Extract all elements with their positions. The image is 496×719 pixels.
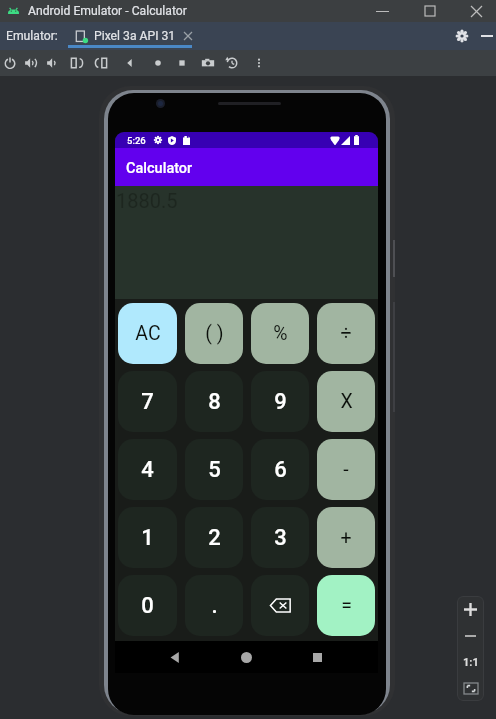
staticText: 8 bbox=[208, 389, 221, 415]
button[interactable]: Rotate right bbox=[90, 50, 112, 76]
staticText: 1 bbox=[141, 525, 154, 551]
button[interactable]: 5 bbox=[185, 439, 243, 500]
button[interactable]: Volume up bbox=[20, 50, 42, 76]
button[interactable]: 7 bbox=[118, 371, 177, 432]
staticText: Emulator: bbox=[6, 29, 58, 43]
button[interactable]: Hide bbox=[476, 22, 496, 50]
staticText: ( ) bbox=[205, 322, 224, 345]
staticText: 1880.5 bbox=[116, 189, 178, 212]
button[interactable]: . bbox=[185, 575, 243, 636]
staticText: 5:26 bbox=[127, 135, 146, 146]
staticText: AC bbox=[135, 322, 161, 345]
staticText: 6 bbox=[274, 457, 287, 483]
button[interactable]: = bbox=[317, 575, 375, 636]
button[interactable]: Home bbox=[230, 641, 262, 673]
button[interactable]: % bbox=[251, 303, 309, 364]
button[interactable]: Pixel 3a API 31 bbox=[75, 22, 200, 50]
button[interactable]: Back bbox=[159, 641, 191, 673]
button[interactable]: Minimize bbox=[359, 0, 406, 22]
staticText: X bbox=[340, 390, 353, 413]
staticText: 5 bbox=[208, 457, 221, 483]
other: Backspace bbox=[270, 598, 291, 613]
button[interactable]: + bbox=[317, 507, 375, 568]
staticText: Calculator bbox=[126, 160, 193, 177]
button[interactable]: Zoom in bbox=[457, 596, 484, 623]
button[interactable]: Rotate left bbox=[66, 50, 88, 76]
button[interactable]: Volume down bbox=[42, 50, 64, 76]
button[interactable]: Power bbox=[0, 50, 21, 76]
button[interactable]: More bbox=[248, 50, 270, 76]
staticText: 2 bbox=[208, 525, 221, 551]
staticText: 9 bbox=[274, 389, 287, 415]
button[interactable]: 1 bbox=[118, 507, 177, 568]
button[interactable]: AC bbox=[118, 303, 177, 364]
button[interactable]: Fit to window bbox=[457, 675, 484, 701]
button[interactable]: 4 bbox=[118, 439, 177, 500]
staticText: 4 bbox=[141, 457, 154, 483]
staticText: Android Emulator - Calculator bbox=[28, 4, 187, 18]
staticText: 0 bbox=[141, 593, 154, 619]
button[interactable]: Home bbox=[147, 50, 169, 76]
staticText: - bbox=[343, 458, 349, 481]
staticText: Pixel 3a API 31 bbox=[94, 29, 176, 43]
button[interactable]: 2 bbox=[185, 507, 243, 568]
button[interactable]: ( ) bbox=[185, 303, 243, 364]
button[interactable]: 9 bbox=[251, 371, 309, 432]
staticText: % bbox=[273, 322, 288, 345]
button[interactable]: 3 bbox=[251, 507, 309, 568]
button[interactable]: - bbox=[317, 439, 375, 500]
staticText: 3 bbox=[274, 525, 287, 551]
button[interactable]: 0 bbox=[118, 575, 177, 636]
staticText: = bbox=[341, 594, 352, 617]
staticText: 7 bbox=[141, 389, 154, 415]
button[interactable]: Zoom out bbox=[457, 623, 484, 649]
button[interactable]: Close bbox=[457, 0, 496, 22]
button[interactable]: Backspace bbox=[251, 575, 309, 636]
staticText: . bbox=[211, 593, 218, 619]
button[interactable]: Recents bbox=[301, 641, 333, 673]
button[interactable]: X bbox=[317, 371, 375, 432]
button[interactable]: Back bbox=[119, 50, 141, 76]
button[interactable]: 6 bbox=[251, 439, 309, 500]
button[interactable]: Maximize bbox=[406, 0, 453, 22]
button[interactable]: Overview bbox=[171, 50, 193, 76]
button[interactable]: Settings bbox=[450, 22, 474, 50]
staticText: 1:1 bbox=[463, 656, 479, 669]
staticText: + bbox=[340, 526, 352, 549]
button[interactable]: History bbox=[221, 50, 243, 76]
button[interactable]: Actual size bbox=[457, 649, 484, 675]
staticText: ÷ bbox=[340, 322, 352, 345]
button[interactable]: Screenshot bbox=[197, 50, 219, 76]
button[interactable]: 8 bbox=[185, 371, 243, 432]
button[interactable]: ÷ bbox=[317, 303, 375, 364]
